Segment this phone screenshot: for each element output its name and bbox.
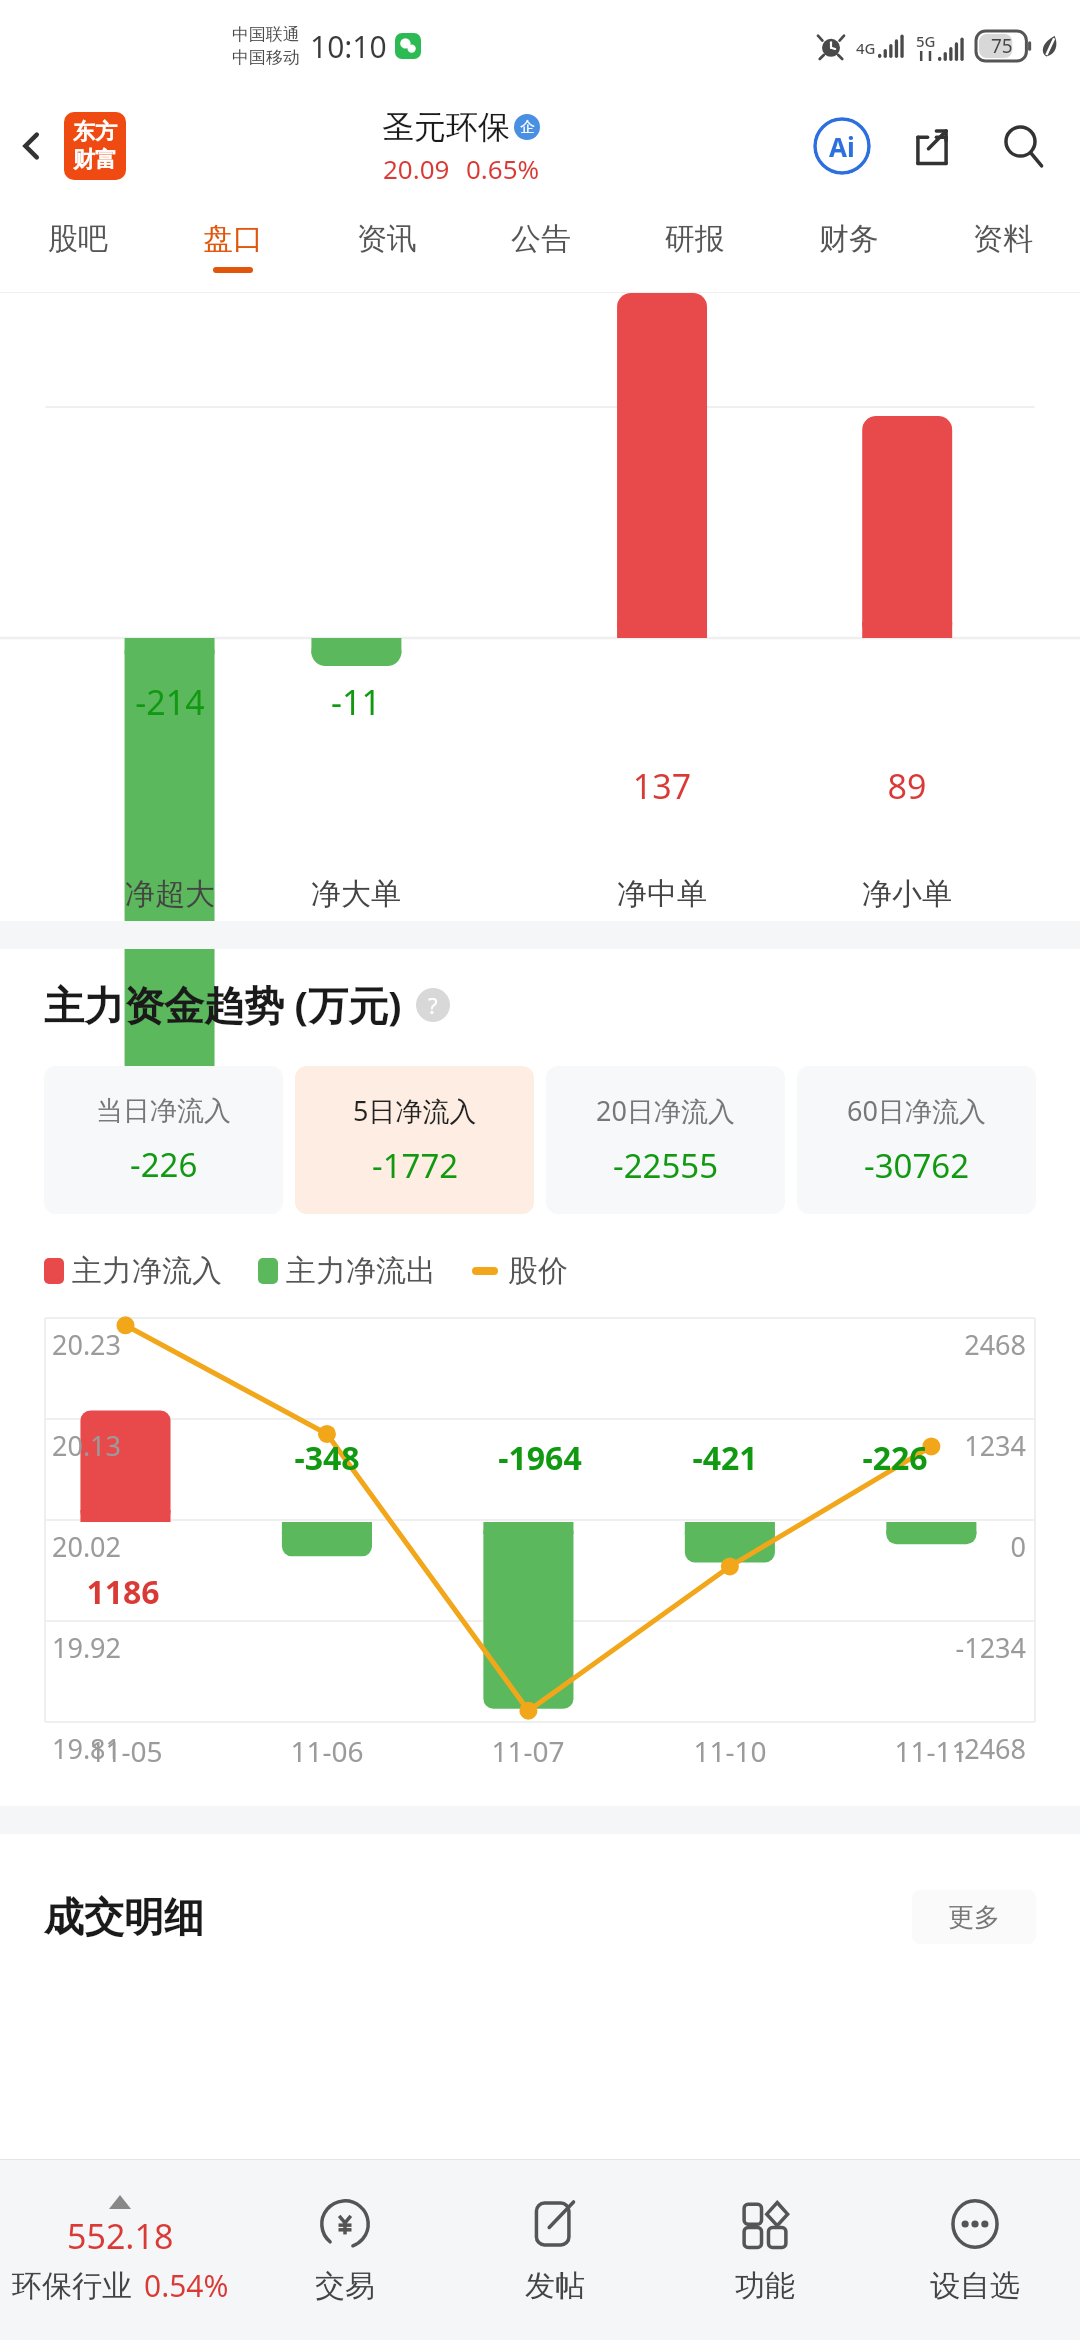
button[interactable]: 552.18 <box>0 2195 240 2306</box>
staticText: 11-06 <box>227 1732 427 1770</box>
staticText: -226 <box>795 1436 995 1480</box>
staticText: -30762 <box>864 1143 970 1188</box>
staticText: 净大单 <box>266 875 446 913</box>
staticText: 研报 <box>665 220 725 258</box>
staticText: 1234 <box>0 1427 1026 1464</box>
staticText: -1964 <box>440 1436 640 1480</box>
staticText: 60日净流入 <box>847 1092 986 1129</box>
staticText: 财务 <box>819 220 879 258</box>
staticText: 财富 <box>73 146 117 174</box>
staticText: 净超大 <box>80 875 260 913</box>
button[interactable]: 资料 <box>926 200 1080 292</box>
button[interactable]: 功能 <box>660 2160 870 2340</box>
staticText: 公告 <box>511 220 571 258</box>
button[interactable]: 资讯 <box>310 200 464 292</box>
staticText: -11 <box>256 679 456 725</box>
staticText: 股吧 <box>48 220 108 258</box>
staticText: 4G <box>856 38 876 58</box>
staticText: 发帖 <box>525 2267 585 2305</box>
staticText: 552.18 <box>67 2213 174 2259</box>
button[interactable]: 财务 <box>772 200 926 292</box>
staticText: 盘口 <box>203 220 263 258</box>
staticText: 净小单 <box>817 875 997 913</box>
staticText: 89 <box>807 763 1007 809</box>
staticText: 中国移动 <box>232 47 300 68</box>
staticText: 11-05 <box>26 1732 226 1770</box>
staticText: 5日净流入 <box>353 1092 477 1129</box>
staticText: 20日净流入 <box>596 1092 735 1129</box>
staticText: 主力净流入 <box>72 1252 222 1290</box>
button[interactable]: 20日净流入 <box>546 1066 785 1214</box>
staticText: 设自选 <box>930 2267 1020 2305</box>
button[interactable]: 更多 <box>912 1890 1036 1944</box>
staticText: 主力净流出 <box>286 1252 436 1290</box>
staticText: 20.13 <box>52 1427 122 1464</box>
staticText: 当日净流入 <box>96 1094 231 1128</box>
staticText: ? <box>428 990 438 1020</box>
staticText: -1234 <box>0 1629 1026 1666</box>
staticText: 净中单 <box>572 875 752 913</box>
staticText: 20.23 <box>52 1326 122 1363</box>
staticText: 0 <box>0 1528 1026 1565</box>
button[interactable]: Back <box>0 101 64 191</box>
staticText: 137 <box>562 763 762 809</box>
staticText: 19.81 <box>52 1730 122 1767</box>
staticText: -22555 <box>613 1143 719 1188</box>
staticText: 1186 <box>23 1570 223 1614</box>
staticText: -348 <box>227 1436 427 1480</box>
staticText: 主力资金趋势 (万元) <box>44 977 402 1032</box>
staticText: 资讯 <box>357 220 417 258</box>
button[interactable]: 公告 <box>464 200 618 292</box>
staticText: 更多 <box>948 1901 1000 1934</box>
button[interactable]: 股吧 <box>0 200 155 292</box>
staticText: 中国联通 <box>232 24 300 45</box>
staticText: -421 <box>625 1436 825 1480</box>
button[interactable]: Share <box>888 100 976 192</box>
staticText: 19.92 <box>52 1629 122 1666</box>
staticText: -2468 <box>0 1730 1026 1767</box>
staticText: -226 <box>130 1142 198 1187</box>
staticText: 11-11 <box>831 1732 1031 1770</box>
staticText: 东方 <box>73 118 117 146</box>
staticText: 10:10 <box>310 26 387 67</box>
staticText: 75 <box>991 33 1013 59</box>
staticText: 资料 <box>973 220 1033 258</box>
staticText: 圣元环保 <box>382 107 510 147</box>
staticText: 环保行业 <box>12 2267 132 2305</box>
staticText: 0.65% <box>466 151 540 186</box>
staticText: 5G <box>916 31 936 51</box>
staticText: 0.54% <box>144 2265 229 2306</box>
button[interactable]: East Money <box>64 112 126 180</box>
staticText: 成交明细 <box>44 1892 204 1942</box>
staticText: 交易 <box>315 2267 375 2305</box>
button[interactable]: Search <box>976 100 1072 192</box>
button[interactable]: 交易 <box>240 2160 450 2340</box>
button[interactable]: 圣元环保 <box>382 107 540 186</box>
button[interactable]: Help <box>416 988 450 1022</box>
button[interactable]: 当日净流入 <box>44 1066 283 1214</box>
button[interactable]: AI assistant <box>796 100 888 192</box>
staticText: 20.02 <box>52 1528 122 1565</box>
button[interactable]: 5日净流入 <box>295 1066 534 1214</box>
staticText: 股价 <box>508 1252 568 1290</box>
button[interactable]: 研报 <box>618 200 772 292</box>
staticText: 企 <box>520 118 535 137</box>
button[interactable]: 盘口 <box>155 200 310 292</box>
staticText: 11-07 <box>428 1732 628 1770</box>
staticText: 2468 <box>0 1326 1026 1363</box>
staticText: 11-10 <box>630 1732 830 1770</box>
button[interactable]: 设自选 <box>870 2160 1080 2340</box>
staticText: 20.09 <box>383 151 450 186</box>
button[interactable]: 发帖 <box>450 2160 660 2340</box>
staticText: 功能 <box>735 2267 795 2305</box>
button[interactable]: 60日净流入 <box>797 1066 1036 1214</box>
staticText: Ai <box>829 129 855 164</box>
staticText: -214 <box>70 679 270 725</box>
staticText: -1772 <box>372 1143 459 1188</box>
